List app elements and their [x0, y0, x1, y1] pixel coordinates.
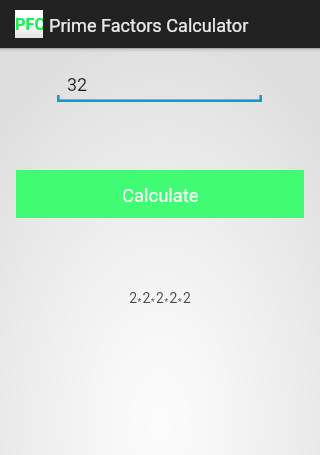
staticText: 32: [67, 74, 88, 95]
staticText: PFC: [15, 15, 43, 34]
staticText: 2 *2 *2 *2 *2: [0, 290, 320, 308]
staticText: Calculate: [122, 185, 199, 207]
staticText: Prime Factors Calculator: [49, 15, 249, 36]
button[interactable]: Calculate: [16, 170, 304, 218]
